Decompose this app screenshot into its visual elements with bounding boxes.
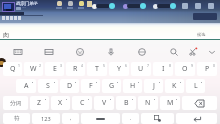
button[interactable]: 分词 <box>3 96 28 110</box>
staticText: Q <box>10 64 16 74</box>
staticText: D <box>67 81 73 91</box>
button[interactable]: , <box>62 113 79 124</box>
button[interactable]: Voice input <box>103 44 118 59</box>
button[interactable]: Z <box>30 96 49 110</box>
staticText: L <box>194 81 198 91</box>
staticText: O <box>182 64 188 74</box>
staticText: 4 <box>81 63 83 68</box>
button[interactable]: T <box>87 62 107 76</box>
button[interactable]: . <box>122 113 139 124</box>
staticText: 5 <box>103 63 105 68</box>
button[interactable]: S <box>38 79 58 93</box>
staticText: M <box>167 98 174 108</box>
staticText: 123 <box>41 115 51 123</box>
button[interactable]: L <box>186 79 205 93</box>
staticText: 分词 <box>10 100 22 107</box>
button[interactable]: Menu icon <box>195 3 201 9</box>
staticText: 9 <box>191 63 193 68</box>
staticText: K <box>172 81 177 91</box>
staticText: . <box>130 115 132 122</box>
button[interactable]: Menu icon <box>208 3 214 9</box>
button[interactable]: Keyboard <box>10 44 25 59</box>
button[interactable]: More <box>204 44 219 59</box>
button[interactable]: H <box>123 79 142 93</box>
button[interactable]: G <box>102 79 121 93</box>
staticText: Z <box>37 98 42 108</box>
button[interactable]: Emoji <box>72 44 87 59</box>
staticText: P <box>205 64 210 74</box>
button[interactable]: D <box>60 79 79 93</box>
button[interactable]: M <box>160 96 180 110</box>
staticText: S <box>46 81 50 91</box>
staticText: B <box>124 98 129 108</box>
staticText: 战宗门弟子 <box>16 1 38 7</box>
staticText: N <box>145 98 151 108</box>
button[interactable]: 123 <box>32 113 60 124</box>
button[interactable]: X <box>51 96 70 110</box>
staticText: 7 <box>147 63 149 68</box>
staticText: C <box>80 98 85 108</box>
button[interactable]: Sticker <box>41 44 56 59</box>
button[interactable]: 肉 <box>3 31 9 39</box>
button[interactable]: E <box>45 62 64 76</box>
staticText: 2 <box>39 63 41 68</box>
button[interactable]: U <box>131 62 151 76</box>
button[interactable]: K <box>165 79 184 93</box>
staticText: U <box>138 64 144 74</box>
staticText: 3 <box>60 63 62 68</box>
button[interactable]: V <box>94 96 114 110</box>
button[interactable]: Backspace <box>182 96 217 110</box>
button[interactable]: Assistant <box>0 58 6 67</box>
button[interactable]: Enter <box>176 113 217 124</box>
button[interactable]: P <box>197 62 217 76</box>
button[interactable]: Space <box>81 113 120 124</box>
button[interactable]: A <box>16 79 36 93</box>
staticText: 6 <box>125 63 127 68</box>
button[interactable]: O <box>175 62 195 76</box>
staticText: J <box>153 81 155 91</box>
button[interactable]: Emoji <box>141 113 174 124</box>
staticText: E <box>53 64 57 74</box>
button[interactable]: N <box>138 96 158 110</box>
staticText: R <box>73 64 78 74</box>
staticText: T <box>95 64 99 74</box>
button[interactable]: B <box>116 96 136 110</box>
button[interactable]: C <box>72 96 92 110</box>
staticText: F <box>89 81 93 91</box>
staticText: 1 <box>18 63 20 68</box>
button[interactable]: R <box>66 62 85 76</box>
staticText: I <box>162 64 165 74</box>
staticText: Y <box>117 64 121 74</box>
staticText: 0 <box>213 63 215 68</box>
button[interactable]: 候选 <box>197 32 206 37</box>
button[interactable]: Translate <box>134 44 149 59</box>
staticText: G <box>109 81 115 91</box>
button[interactable]: Y <box>109 62 129 76</box>
button[interactable]: J <box>144 79 163 93</box>
staticText: H <box>130 81 136 91</box>
staticText: , <box>70 115 72 122</box>
button[interactable]: Q <box>3 62 22 76</box>
button[interactable]: 符 <box>3 113 30 124</box>
button[interactable]: Clipboard <box>185 44 200 59</box>
staticText: 符 <box>14 115 20 122</box>
button[interactable]: Search <box>166 44 181 59</box>
button[interactable]: W <box>24 62 43 76</box>
button[interactable]: Menu icon <box>182 3 188 9</box>
button[interactable]: F <box>81 79 100 93</box>
staticText: V <box>102 98 107 108</box>
staticText: 8 <box>169 63 171 68</box>
button[interactable]: I <box>153 62 173 76</box>
staticText: ····· <box>22 6 27 10</box>
staticText: A <box>24 81 29 91</box>
staticText: W <box>30 64 37 74</box>
staticText: X <box>58 98 63 108</box>
